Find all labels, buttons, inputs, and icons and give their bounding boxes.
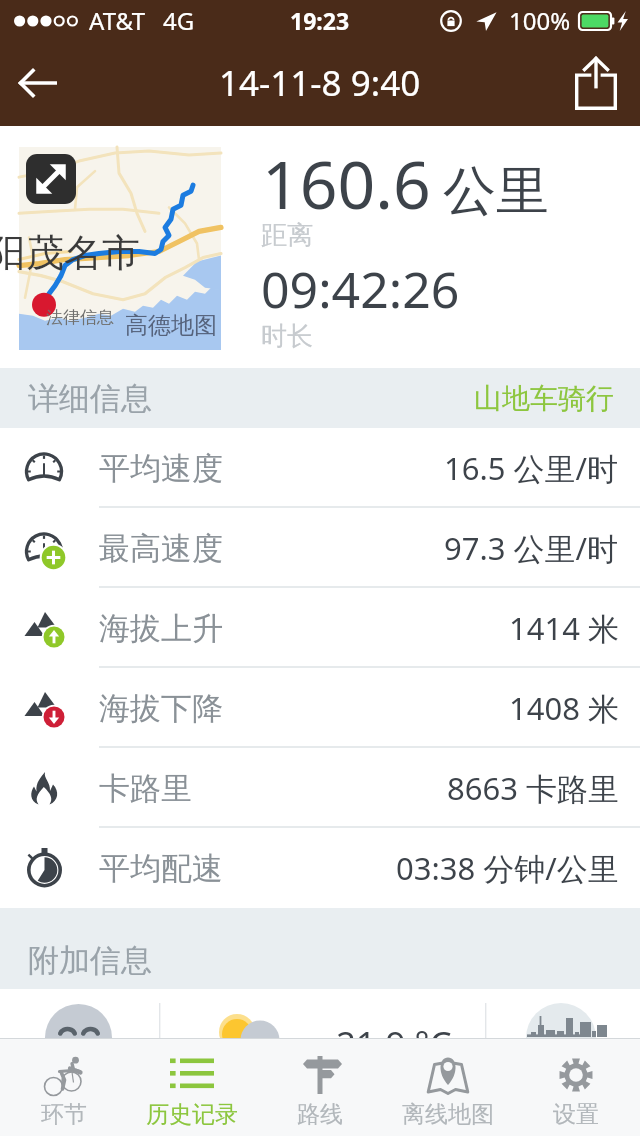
button[interactable]: 海拔下降 xyxy=(0,668,640,748)
staticText: 1408 米 xyxy=(509,687,619,729)
button[interactable]: 平均速度 xyxy=(0,428,640,508)
staticText: 16.5 公里/时 xyxy=(444,447,619,489)
staticText: 14-11-8 9:40 xyxy=(219,59,421,107)
button[interactable]: 海拔上升 xyxy=(0,588,640,668)
staticText: 09:42:26 xyxy=(261,255,460,323)
staticText: 路线 xyxy=(297,1100,343,1129)
staticText: 离线地图 xyxy=(402,1100,494,1129)
button[interactable]: 离线地图 xyxy=(384,1039,512,1136)
button[interactable]: 平均配速 xyxy=(0,828,640,908)
staticText: AT&T xyxy=(89,4,145,37)
button[interactable]: 路线 xyxy=(256,1039,384,1136)
button[interactable]: 环节 xyxy=(0,1039,128,1136)
staticText: 1414 米 xyxy=(509,607,619,649)
staticText: 时长 xyxy=(261,320,313,353)
staticText: 8663 卡路里 xyxy=(447,767,619,809)
staticText: 160.6 xyxy=(262,138,431,228)
button[interactable]: 卡路里 xyxy=(0,748,640,828)
button[interactable]: 历史记录 xyxy=(128,1039,256,1136)
staticText: 平均速度 xyxy=(99,449,223,488)
button[interactable]: Expand map xyxy=(26,154,76,204)
button[interactable]: Back xyxy=(0,40,76,126)
staticText: 卡路里 xyxy=(99,769,192,808)
staticText: 设置 xyxy=(553,1100,599,1129)
staticText: 法律信息 xyxy=(46,307,114,328)
button[interactable]: Map thumbnail xyxy=(19,147,221,350)
button[interactable]: Share xyxy=(552,40,640,126)
staticText: 最高速度 xyxy=(99,529,223,568)
staticText: 4G xyxy=(163,4,195,37)
staticText: 海拔上升 xyxy=(99,609,223,648)
staticText: 山地车骑行 xyxy=(474,381,614,416)
button[interactable]: 21.9 °C xyxy=(0,989,640,1038)
staticText: 100% xyxy=(509,4,571,37)
staticText: 附加信息 xyxy=(28,941,152,980)
staticText: 平均配速 xyxy=(99,849,223,888)
staticText: 距离 xyxy=(261,219,313,252)
staticText: 阳茂名市 xyxy=(0,229,140,277)
staticText: 环节 xyxy=(41,1100,87,1129)
staticText: 19:23 xyxy=(290,5,350,36)
button[interactable]: 最高速度 xyxy=(0,508,640,588)
staticText: 公里 xyxy=(443,158,549,225)
staticText: 详细信息 xyxy=(28,379,152,418)
staticText: 高德地图 xyxy=(125,311,217,340)
staticText: 海拔下降 xyxy=(99,689,223,728)
staticText: 97.3 公里/时 xyxy=(444,527,619,569)
staticText: 21.9 °C xyxy=(336,1020,452,1068)
button[interactable]: 设置 xyxy=(512,1039,640,1136)
staticText: 03:38 分钟/公里 xyxy=(396,847,619,889)
staticText: 历史记录 xyxy=(146,1100,238,1129)
